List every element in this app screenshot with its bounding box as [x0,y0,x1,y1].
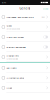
button[interactable]: Sleep [0,22,50,32]
button[interactable]: Done [41,6,50,11]
staticText: General [19,7,30,10]
button[interactable]: Night [0,83,50,93]
button[interactable]: Alternative enter [0,73,50,83]
staticText: Charge info [6,54,18,57]
staticText: After 30 seconds [6,27,20,30]
button[interactable]: Auto-lock screen [0,32,50,42]
staticText: Dark [41,16,45,18]
staticText: When charging [6,57,18,60]
staticText: Sleep [6,24,11,27]
button[interactable]: Charge info [0,52,50,62]
staticText: Alternative enter [6,76,24,79]
button[interactable]: Battery percentage [0,42,50,52]
staticText: Battery percentage [6,45,25,49]
staticText: Key lights [6,66,16,69]
staticText: Wallpaper and screen style [6,15,33,19]
staticText: 9:41 [2,1,6,4]
staticText: Auto-lock screen [6,35,23,39]
button[interactable]: Wallpaper and screen style [0,12,50,22]
staticText: Night [6,86,12,89]
button[interactable]: Key lights [0,63,50,73]
staticText: Done [43,7,48,10]
